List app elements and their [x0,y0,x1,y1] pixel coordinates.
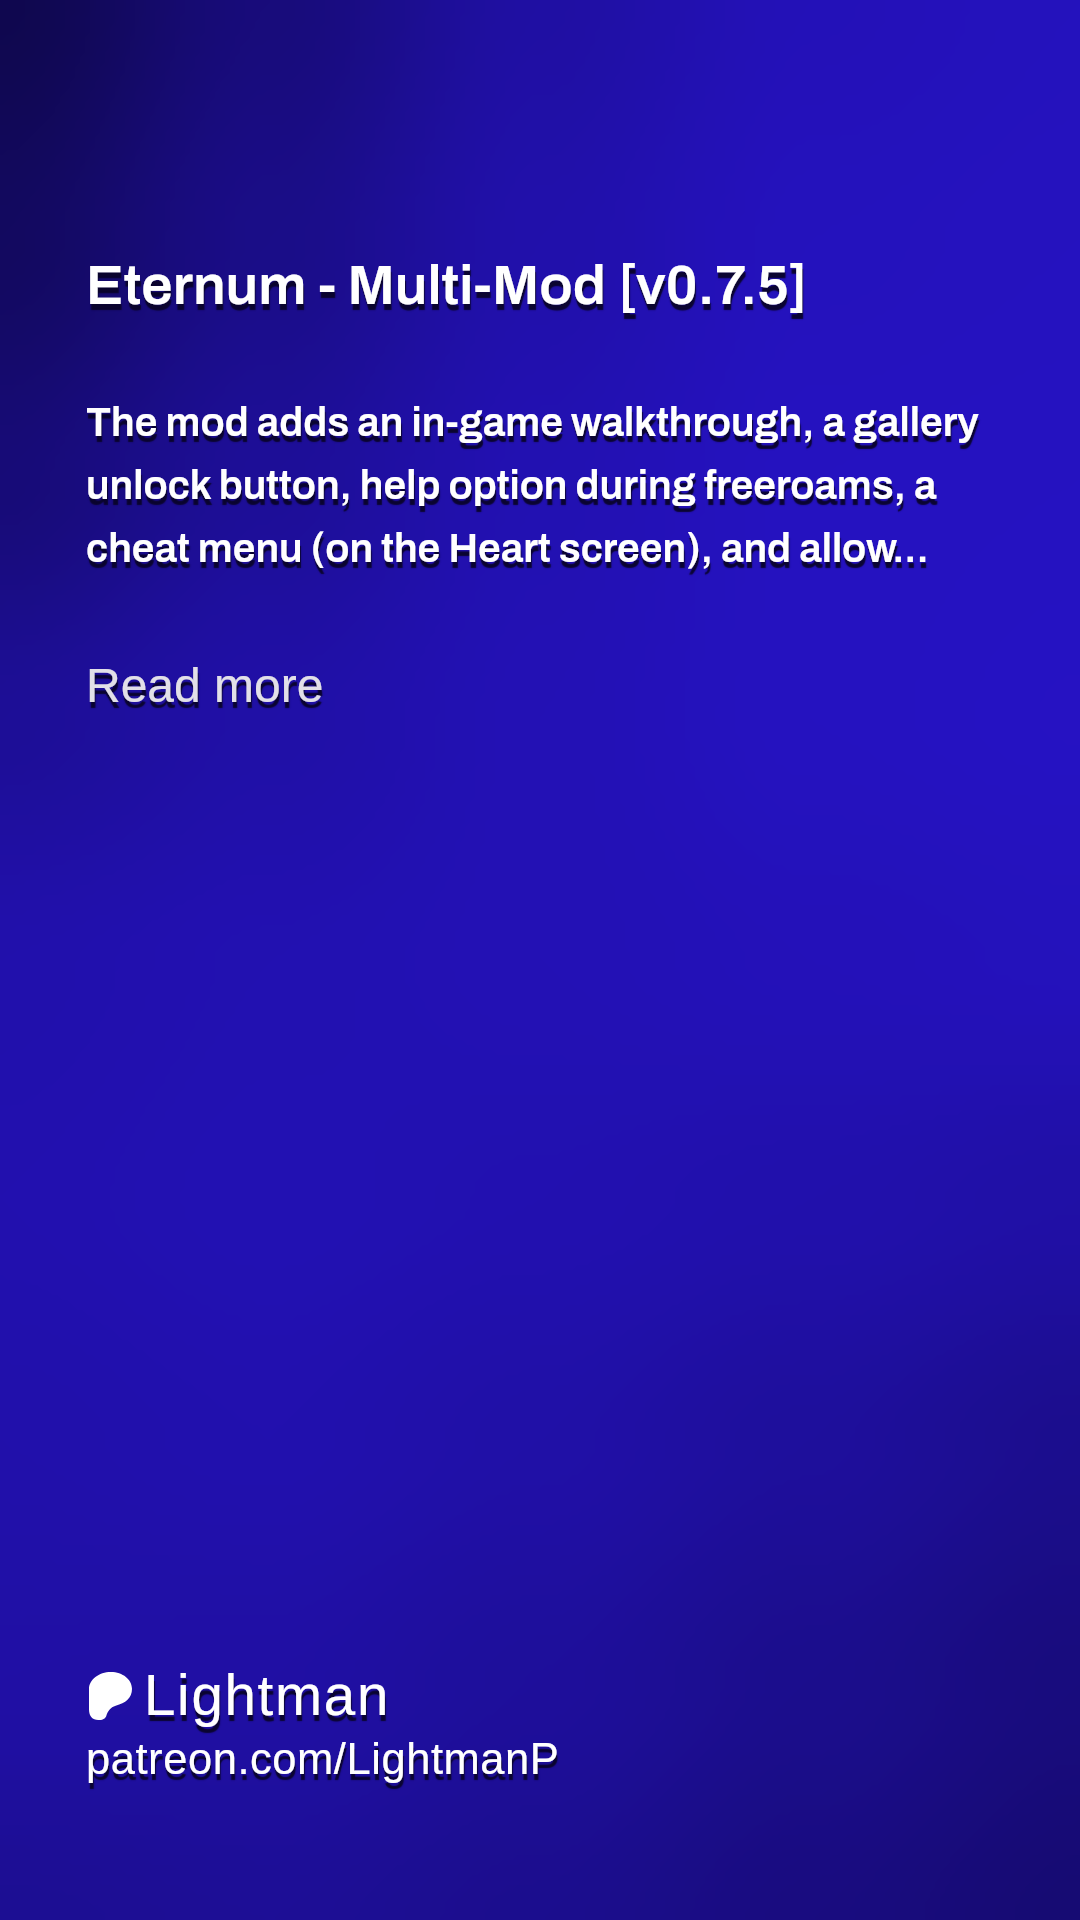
button[interactable]: Read more [86,659,324,713]
button[interactable]: Patreon [89,1664,391,1727]
staticText: The mod adds an in-game walkthrough, a g… [86,400,979,570]
staticText: Eternum - Multi-Mod [v0.7.5] [86,255,809,316]
staticText: patreon.com/LightmanP [86,1735,560,1784]
staticText: Lightman [144,1664,391,1727]
staticText: Read more [86,659,324,713]
other: Patreon [89,1672,132,1720]
